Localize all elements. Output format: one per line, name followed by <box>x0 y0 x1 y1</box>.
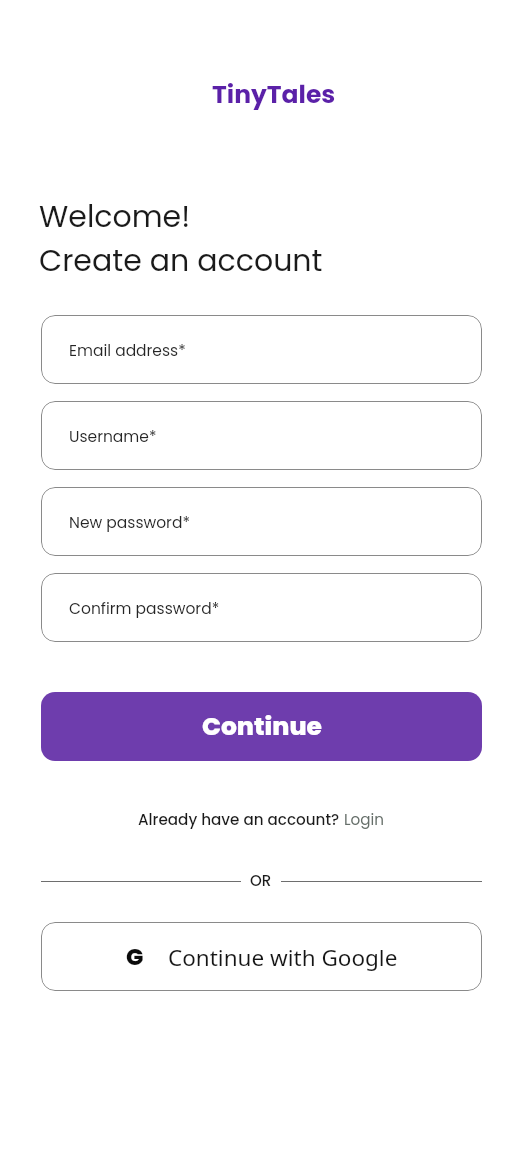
staticText: Continue <box>202 709 322 744</box>
button[interactable]: Username* <box>41 401 482 470</box>
staticText: New password* <box>69 512 190 534</box>
staticText: Username* <box>69 426 157 448</box>
button[interactable]: Email address* <box>41 315 482 384</box>
button[interactable]: Continue <box>41 692 482 761</box>
button[interactable]: New password* <box>41 487 482 556</box>
staticText: Already have an account? <box>138 809 344 830</box>
staticText: Confirm password* <box>69 598 220 620</box>
staticText: Create an account <box>39 240 323 282</box>
button[interactable]: Login <box>344 809 385 830</box>
staticText: TinyTales <box>212 77 336 112</box>
staticText: Continue with Google <box>168 942 398 973</box>
staticText: Login <box>344 809 385 830</box>
staticText: OR <box>250 870 272 891</box>
button[interactable]: Confirm password* <box>41 573 482 642</box>
staticText: Email address* <box>69 340 186 362</box>
button[interactable]: Google logo <box>41 922 482 991</box>
staticText: G <box>126 941 144 973</box>
staticText: Welcome! <box>39 196 191 238</box>
